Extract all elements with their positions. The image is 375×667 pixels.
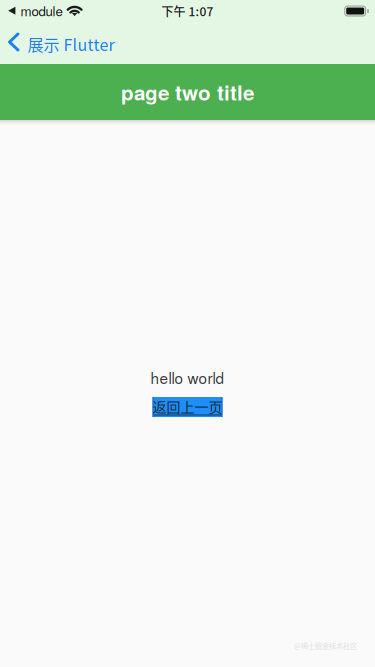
button[interactable]: 返回上一页 <box>152 397 222 417</box>
staticText: 下午 1:07 <box>161 2 213 20</box>
button[interactable]: 展示 Flutter <box>0 24 124 64</box>
staticText: module <box>21 1 63 20</box>
staticText: page two title <box>121 77 254 107</box>
staticText: hello world <box>150 366 224 388</box>
staticText: 展示 Flutter <box>27 32 114 56</box>
staticText: @稀土掘金技术社区 <box>294 640 357 651</box>
staticText: 返回上一页 <box>152 396 222 417</box>
